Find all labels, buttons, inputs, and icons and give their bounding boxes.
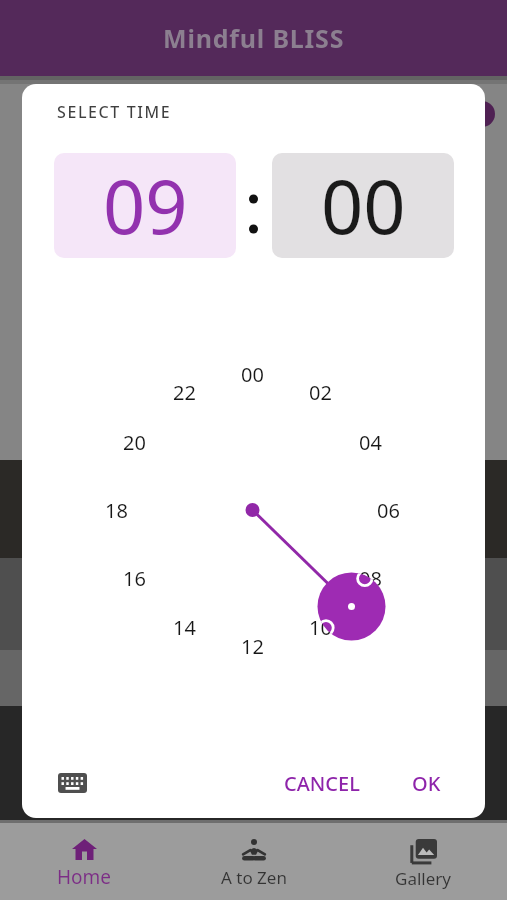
button[interactable]: A to Zen	[169, 820, 338, 900]
staticText: Gallery	[395, 867, 451, 890]
staticText: 20	[123, 429, 146, 455]
staticText: 12	[241, 633, 264, 659]
staticText: 02	[309, 379, 332, 405]
staticText: 18	[105, 497, 128, 523]
button[interactable]: Gallery	[338, 820, 507, 900]
button[interactable]	[50, 765, 94, 801]
staticText: 22	[173, 379, 196, 405]
staticText: 00	[241, 361, 264, 387]
staticText: 10	[309, 614, 332, 640]
staticText: 08	[359, 565, 382, 591]
staticText: 09	[103, 155, 188, 256]
staticText: 16	[123, 565, 146, 591]
button[interactable]: OK	[398, 767, 454, 799]
staticText: 04	[359, 429, 382, 455]
staticText: SELECT TIME	[57, 101, 172, 123]
staticText: Home	[57, 864, 112, 890]
button[interactable]: Home	[0, 820, 169, 900]
staticText: 14	[173, 614, 196, 640]
button[interactable]: 00	[272, 153, 454, 258]
button[interactable]: 09	[54, 153, 236, 258]
staticText: 06	[377, 497, 400, 523]
staticText: CANCEL	[284, 770, 360, 797]
button[interactable]	[469, 101, 495, 127]
staticText: Mindful BLISS	[163, 21, 345, 55]
staticText: 00	[321, 155, 406, 256]
staticText: OK	[412, 770, 441, 797]
button[interactable]: CANCEL	[277, 767, 367, 799]
staticText: A to Zen	[221, 866, 287, 889]
